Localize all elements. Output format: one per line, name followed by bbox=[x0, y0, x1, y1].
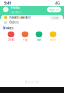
staticText: View bbox=[52, 16, 58, 19]
staticText: Orders bbox=[9, 21, 18, 24]
staticText: Services bbox=[3, 26, 13, 30]
staticText: End of list bbox=[25, 80, 39, 84]
button[interactable]: More bbox=[46, 31, 60, 41]
staticText: Pay bbox=[23, 38, 27, 41]
staticText: member bbox=[10, 11, 21, 14]
staticText: Hello bbox=[10, 5, 19, 10]
button[interactable]: Scan bbox=[32, 31, 46, 41]
staticText: Sign in bbox=[49, 8, 59, 11]
button[interactable]: Deals bbox=[4, 31, 18, 41]
staticText: More bbox=[49, 38, 56, 41]
button[interactable]: Pay bbox=[18, 31, 32, 41]
staticText: Rewards available bbox=[9, 16, 31, 19]
staticText: 4G bbox=[55, 0, 60, 6]
button[interactable]: Sign in bbox=[47, 7, 61, 12]
staticText: Scan bbox=[36, 38, 41, 41]
button[interactable]: View bbox=[50, 15, 60, 20]
staticText: Deals bbox=[7, 38, 14, 41]
staticText: 9:41 bbox=[4, 0, 11, 6]
